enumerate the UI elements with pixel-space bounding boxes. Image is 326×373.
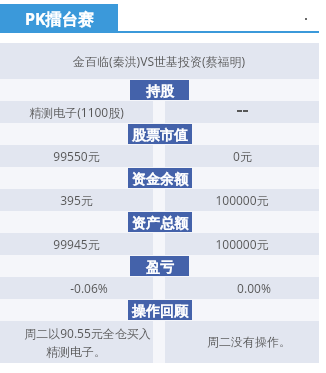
button[interactable]: 操作回顾 <box>132 300 188 320</box>
staticText: 操作回顾 <box>132 303 188 321</box>
staticText: 金百临(秦洪)VS世基投资(蔡福明) <box>73 53 246 69</box>
staticText: 资产总额 <box>132 215 188 233</box>
staticText: 股票市值 <box>132 127 188 145</box>
button[interactable]: 金百临(秦洪)VS世基投资(蔡福明) <box>0 43 319 79</box>
button[interactable]: 持股 <box>134 80 185 100</box>
button[interactable]: 周二以90.55元全仓买入 <box>0 321 153 363</box>
button[interactable]: 盈亏 <box>134 256 185 276</box>
button[interactable]: 395元 <box>0 189 153 211</box>
staticText: 精测电子(1100股) <box>29 104 124 120</box>
button[interactable]: 资产总额 <box>132 212 188 232</box>
staticText: 周二没有操作。 <box>207 334 291 349</box>
staticText: 0.00% <box>237 280 271 296</box>
button[interactable] <box>165 101 319 123</box>
staticText: 资金余额 <box>132 171 188 189</box>
staticText: 99550元 <box>53 148 100 164</box>
button[interactable]: 100000元 <box>165 233 319 255</box>
staticText: PK擂台赛 <box>25 8 94 30</box>
button[interactable]: PK擂台赛 <box>0 4 118 32</box>
button[interactable]: 99550元 <box>0 145 153 167</box>
button[interactable]: 周二没有操作。 <box>165 321 319 363</box>
staticText: -0.06% <box>70 280 108 296</box>
staticText: 持股 <box>146 83 174 101</box>
staticText: 0元 <box>233 148 252 164</box>
staticText: 精测电子。 <box>46 344 106 359</box>
staticText: 99945元 <box>53 236 100 252</box>
button[interactable]: 100000元 <box>165 189 319 211</box>
button[interactable]: 0.00% <box>165 277 319 299</box>
button[interactable]: 99945元 <box>0 233 153 255</box>
button[interactable]: -0.06% <box>0 277 153 299</box>
staticText: 100000元 <box>215 236 269 252</box>
button[interactable]: 精测电子(1100股) <box>0 101 153 123</box>
staticText: 100000元 <box>215 192 269 208</box>
button[interactable]: 股票市值 <box>132 124 188 144</box>
staticText: 395元 <box>60 192 93 208</box>
staticText: 周二以90.55元全仓买入 <box>24 325 151 341</box>
button[interactable]: 资金余额 <box>132 168 188 188</box>
button[interactable]: 0元 <box>165 145 319 167</box>
staticText: 盈亏 <box>146 259 174 277</box>
